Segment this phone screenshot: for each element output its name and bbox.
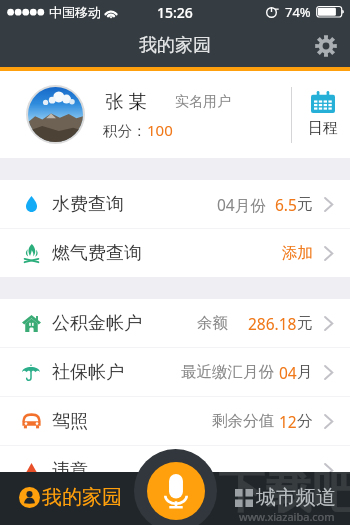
button[interactable]: 公积金帐户 — [0, 299, 350, 347]
button[interactable]: 违章 — [0, 446, 350, 494]
staticText: 286.18 — [248, 313, 297, 334]
staticText: 积分： — [103, 122, 147, 140]
button[interactable]: 水费查询 — [0, 180, 350, 228]
staticText: 我的家园 — [139, 34, 211, 57]
staticText: 剩余分值 — [212, 411, 274, 431]
staticText: 分 — [297, 411, 313, 431]
button[interactable]: 社保帐户 — [0, 348, 350, 396]
staticText: 元 — [297, 313, 313, 333]
staticText: 违章 — [52, 459, 88, 482]
staticText: 12 — [279, 411, 297, 432]
staticText: 燃气费查询 — [52, 242, 142, 265]
staticText: www.xiazaiba.com — [239, 509, 335, 524]
button[interactable]: Settings — [311, 31, 341, 61]
button[interactable]: 驾照 — [0, 397, 350, 445]
button[interactable]: 我的家园 — [0, 472, 175, 525]
staticText: 100 — [147, 120, 173, 140]
staticText: 04月份 — [217, 194, 266, 215]
staticText: 元 — [297, 194, 313, 214]
button[interactable]: 日程 — [305, 89, 341, 140]
staticText: 我的家园 — [42, 485, 122, 510]
staticText: 日程 — [308, 119, 338, 138]
staticText: 中国移动 — [49, 4, 101, 20]
staticText: 社保帐户 — [52, 361, 124, 384]
staticText: 添加 — [282, 243, 313, 263]
staticText: 最近缴汇月份 — [181, 362, 274, 382]
button[interactable]: 城市频道 — [175, 472, 350, 525]
staticText: 74% — [285, 3, 311, 21]
staticText: 月 — [297, 362, 313, 382]
staticText: 驾照 — [52, 410, 88, 433]
staticText: 水费查询 — [52, 193, 124, 216]
button[interactable]: Voice search — [134, 449, 217, 525]
staticText: 04 — [279, 362, 297, 383]
staticText: 城市频道 — [256, 485, 336, 510]
staticText: 下载吧 — [218, 463, 350, 516]
button[interactable]: 燃气费查询 — [0, 229, 350, 277]
staticText: 15:26 — [157, 3, 193, 22]
staticText: 6.5 — [275, 194, 297, 215]
staticText: 公积金帐户 — [52, 312, 142, 335]
staticText: 余额 — [197, 313, 228, 333]
staticText: 张某 — [103, 90, 149, 113]
staticText: 实名用户 — [175, 93, 231, 111]
button[interactable]: User avatar — [28, 87, 83, 142]
